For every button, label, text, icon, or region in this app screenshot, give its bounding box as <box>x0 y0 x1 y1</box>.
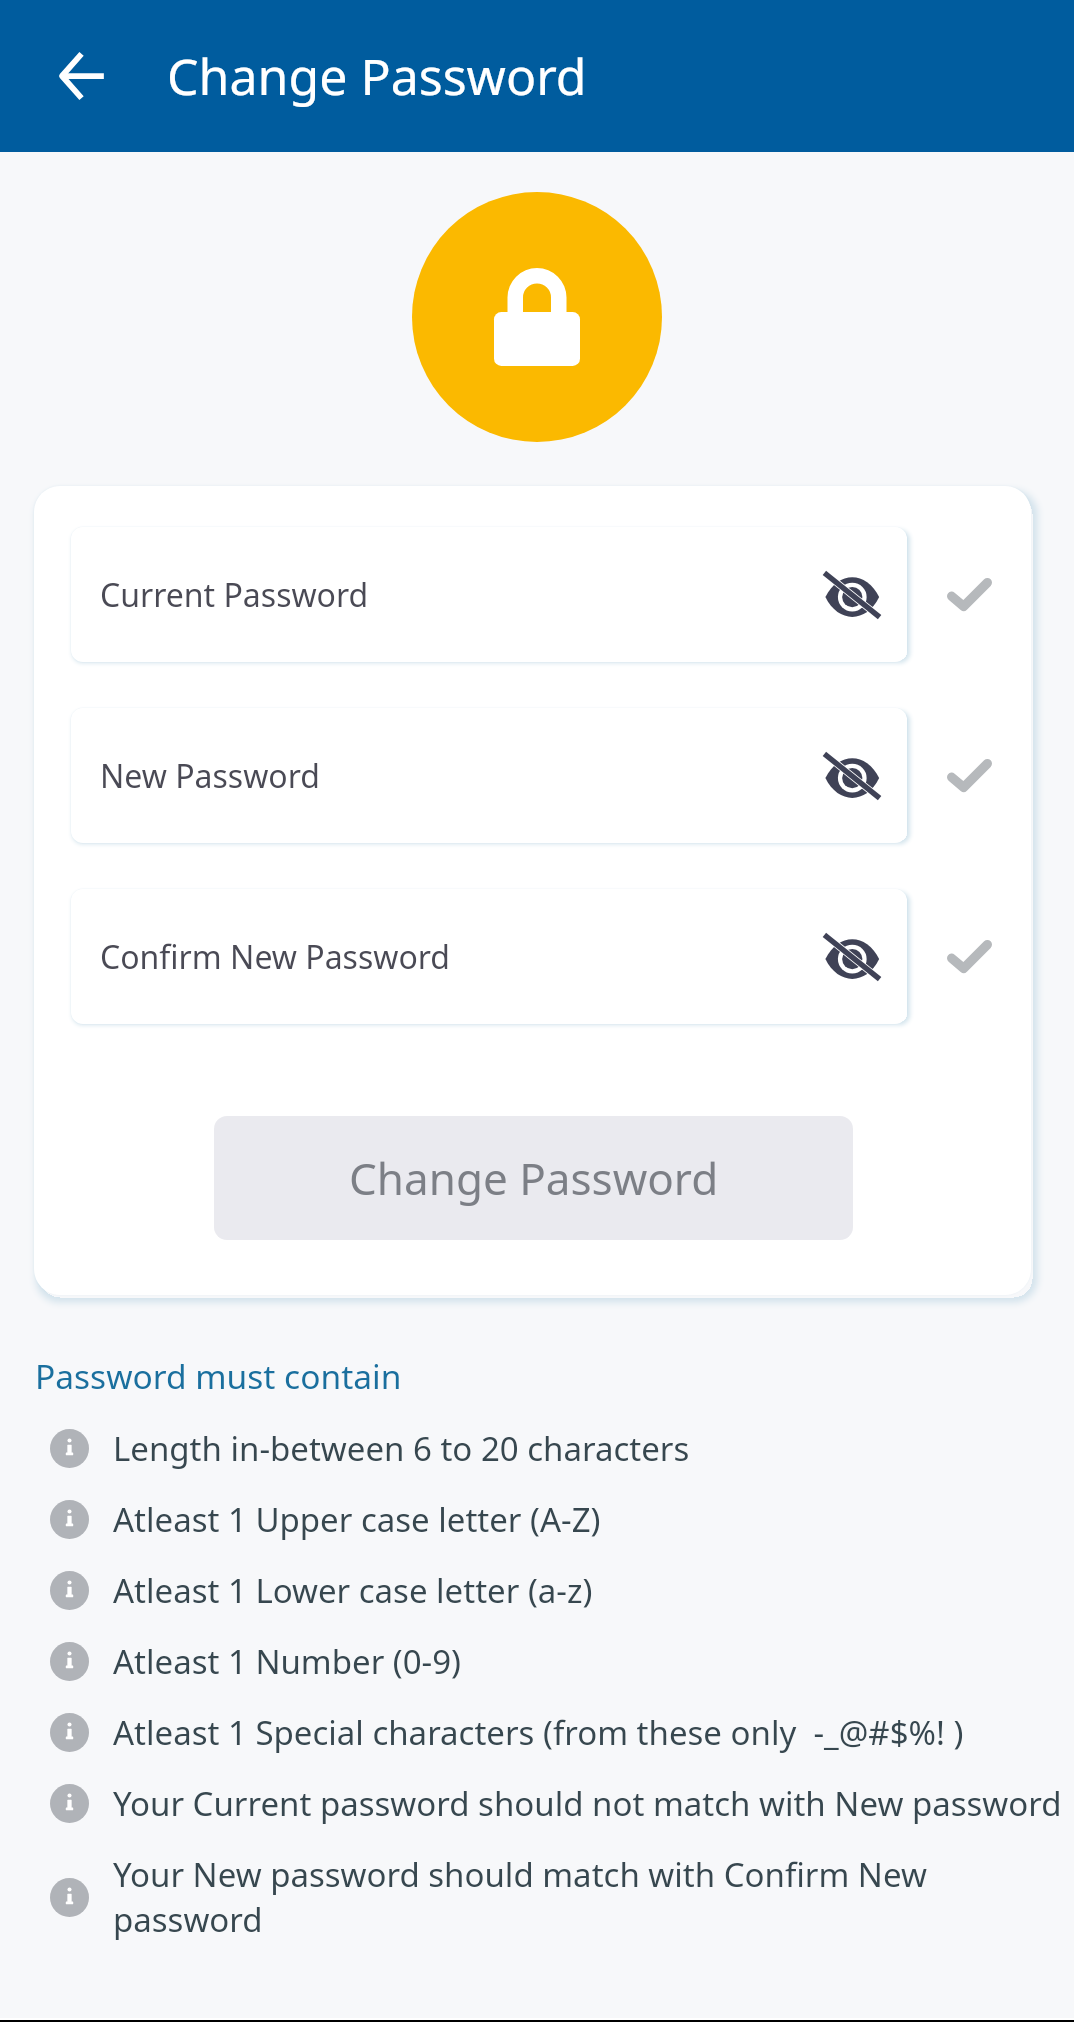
staticText: Confirm New Password <box>100 935 819 979</box>
button[interactable]: Current Password <box>71 527 907 662</box>
button[interactable]: Change Password <box>214 1116 853 1240</box>
button[interactable]: Toggle password visibility <box>819 924 885 990</box>
staticText: Atleast 1 Lower case letter (a-z) <box>113 1568 593 1613</box>
button[interactable]: Confirm New Password <box>71 889 907 1024</box>
staticText: Atleast 1 Number (0-9) <box>113 1639 462 1684</box>
staticText: New Password <box>100 754 819 798</box>
staticText: Length in-between 6 to 20 characters <box>113 1426 690 1471</box>
button[interactable]: Toggle password visibility <box>819 562 885 628</box>
button[interactable]: Back <box>59 53 105 99</box>
staticText: Change Password <box>349 1148 719 1208</box>
button[interactable]: Toggle password visibility <box>819 743 885 809</box>
staticText: Change Password <box>167 42 587 110</box>
staticText: Current Password <box>100 573 819 617</box>
staticText: Your Current password should not match w… <box>113 1781 1062 1826</box>
staticText: Your New password should match with Conf… <box>113 1852 1064 1942</box>
staticText: Password must contain <box>35 1353 402 1399</box>
button[interactable]: New Password <box>71 708 907 843</box>
staticText: Atleast 1 Special characters (from these… <box>113 1710 964 1755</box>
staticText: Atleast 1 Upper case letter (A-Z) <box>113 1497 601 1542</box>
